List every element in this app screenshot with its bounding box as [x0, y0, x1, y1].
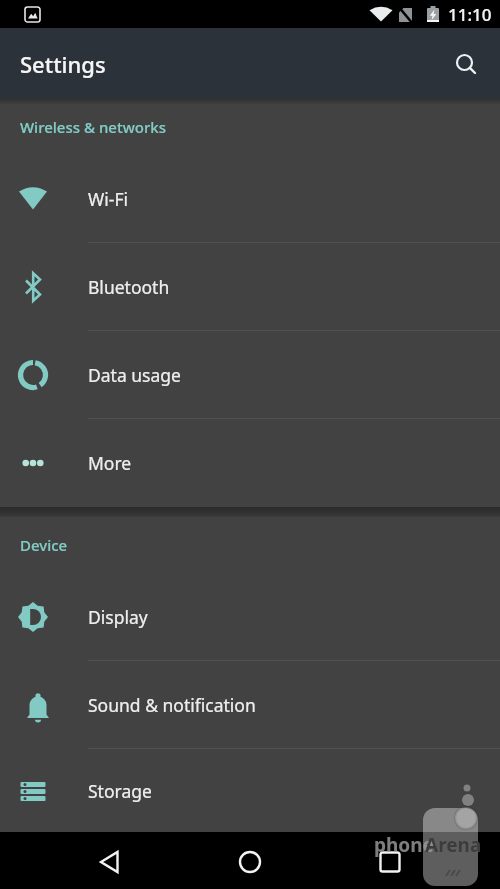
button[interactable]: Wi-Fi — [0, 155, 500, 243]
staticText: Sound & notification — [88, 693, 256, 717]
staticText: Display — [88, 605, 148, 629]
button[interactable] — [366, 832, 414, 889]
staticText: Wi-Fi — [88, 187, 129, 211]
staticText: Bluetooth — [88, 275, 170, 299]
button[interactable]: Bluetooth — [0, 243, 500, 331]
staticText: 11:10 — [448, 3, 492, 26]
staticText: Storage — [88, 779, 152, 803]
staticText: Device — [20, 535, 68, 555]
staticText: More — [88, 451, 132, 475]
button[interactable]: Display — [0, 573, 500, 661]
button[interactable] — [226, 832, 274, 889]
button[interactable]: Data usage — [0, 331, 500, 419]
button[interactable] — [86, 832, 134, 889]
button[interactable]: Storage — [0, 749, 500, 832]
staticText: Arena — [425, 832, 482, 858]
button[interactable]: Sound & notification — [0, 661, 500, 749]
staticText: Wireless & networks — [20, 117, 166, 137]
staticText: phone — [374, 832, 434, 858]
staticText: Data usage — [88, 363, 181, 387]
button[interactable]: More — [0, 419, 500, 507]
staticText: Settings — [20, 49, 106, 79]
button[interactable] — [444, 42, 488, 86]
